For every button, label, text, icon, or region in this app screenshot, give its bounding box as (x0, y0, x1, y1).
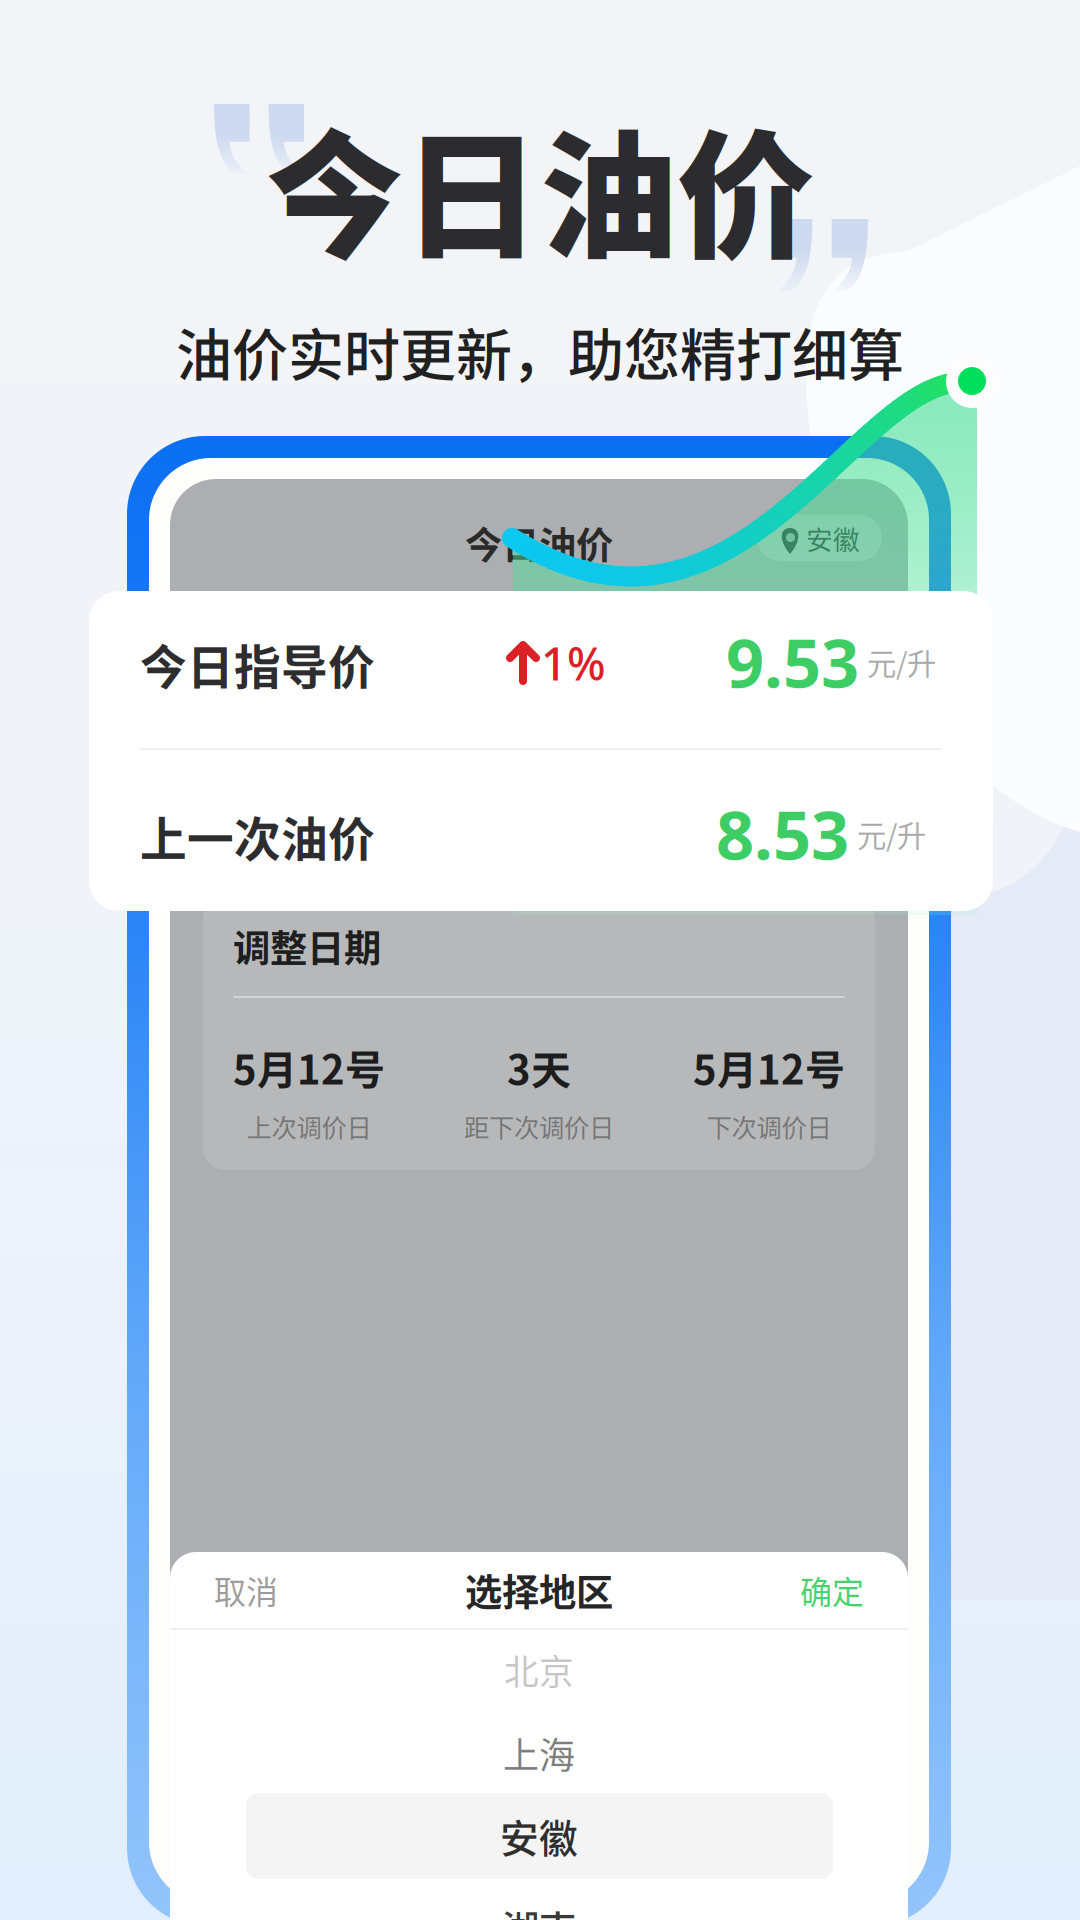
staticText: 安徽 (500, 1808, 578, 1864)
staticText: 8.53 (716, 790, 849, 878)
staticText: 湖南 (502, 1900, 576, 1920)
button[interactable]: 安徽 (170, 1552, 908, 1638)
staticText: 5月12号 (693, 1038, 845, 1096)
staticText: 油价实时更新，助您精打细算 (176, 310, 904, 392)
staticText: 距下次调价日 (464, 1108, 614, 1145)
staticText: 今日油价 (266, 88, 814, 286)
staticText: 取消 (214, 1567, 278, 1613)
staticText: 上次调价日 (246, 1108, 371, 1145)
staticText: 今日指导价 (140, 630, 375, 698)
staticText: 元/升 (867, 641, 936, 683)
staticText: 5月12号 (233, 1038, 385, 1096)
staticText: 调整日期 (233, 919, 381, 973)
staticText: 1% (541, 633, 606, 693)
staticText: 选择地区 (465, 1563, 613, 1617)
staticText: 上一次油价 (140, 802, 375, 870)
staticText: 9.53 (726, 618, 859, 706)
staticText: 确定 (800, 1567, 864, 1613)
button[interactable]: 取消 (170, 1552, 330, 1628)
staticText: 今日油价 (465, 516, 613, 570)
staticText: 3天 (507, 1038, 571, 1096)
button[interactable]: 上海 (170, 1552, 908, 1632)
staticText: 北京 (504, 1645, 574, 1695)
staticText: 元/升 (857, 813, 926, 855)
staticText: 下次调价日 (706, 1108, 831, 1145)
staticText: 安徽 (806, 519, 860, 557)
staticText: 上海 (503, 1727, 575, 1779)
button[interactable]: 北京 (170, 1552, 908, 1632)
button[interactable]: 确定 (170, 1552, 330, 1628)
